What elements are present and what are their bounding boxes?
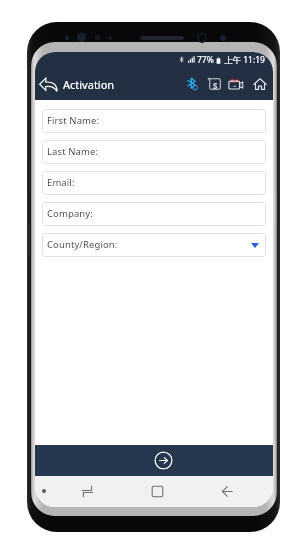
staticText: Email:	[47, 176, 75, 189]
button[interactable]: Activation	[35, 74, 119, 95]
button[interactable]: Record video	[227, 75, 245, 93]
button[interactable]: Next	[154, 451, 173, 470]
button[interactable]: Home	[139, 476, 175, 507]
staticText: 上午 11:19	[224, 54, 265, 66]
button[interactable]: Bluetooth	[183, 75, 201, 93]
staticText: 77%	[197, 54, 214, 66]
button[interactable]: Home	[251, 75, 269, 93]
staticText: S	[213, 80, 218, 91]
staticText: Last Name:	[47, 145, 99, 158]
button[interactable]: Screenshot	[206, 75, 224, 93]
button[interactable]: Email:	[42, 171, 266, 195]
staticText: Company:	[47, 207, 93, 220]
staticText: Activation	[63, 77, 115, 92]
staticText: County/Region:	[47, 238, 118, 251]
button[interactable]: Company:	[42, 202, 266, 226]
button[interactable]: Back	[209, 476, 245, 507]
button[interactable]: County/Region:	[42, 233, 266, 257]
button[interactable]: Last Name:	[42, 140, 266, 164]
staticText: First Name:	[47, 114, 100, 127]
button[interactable]: Recent apps	[69, 476, 105, 507]
button[interactable]: First Name:	[42, 109, 266, 133]
